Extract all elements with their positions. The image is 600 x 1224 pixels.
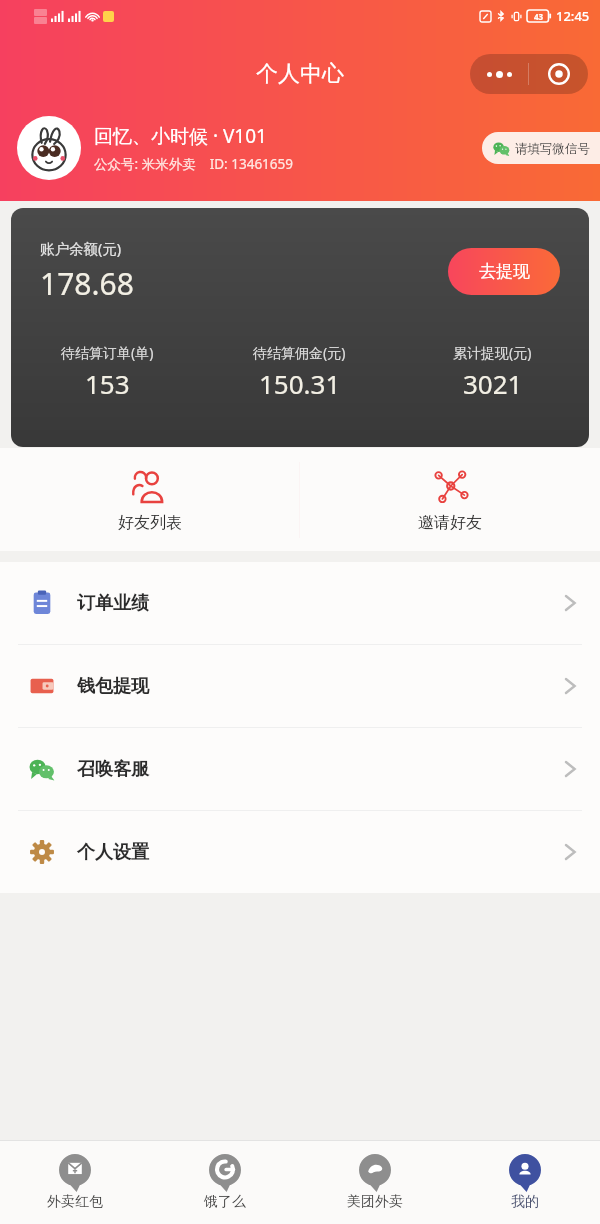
button[interactable]: 好友列表 xyxy=(0,448,299,551)
staticText: 邀请好友 xyxy=(418,513,482,533)
button[interactable]: 订单业绩 xyxy=(0,562,600,644)
button[interactable]: 个人设置 xyxy=(0,811,600,893)
staticText: 账户余额(元) xyxy=(40,238,122,258)
staticText: 153 xyxy=(85,366,130,401)
staticText: 43 xyxy=(534,11,544,22)
button[interactable]: 外卖红包 xyxy=(0,1141,150,1224)
button[interactable]: 邀请好友 xyxy=(300,448,600,551)
button[interactable]: Mini program xyxy=(529,54,588,94)
staticText: 个人设置 xyxy=(77,841,149,864)
staticText: 召唤客服 xyxy=(77,758,149,781)
staticText: 钱包提现 xyxy=(77,675,149,698)
staticText: 待结算订单(单) xyxy=(61,343,154,362)
staticText: 美团外卖 xyxy=(347,1193,403,1211)
staticText: 饿了么 xyxy=(204,1193,246,1211)
staticText: 外卖红包 xyxy=(47,1193,103,1211)
staticText: 好友列表 xyxy=(118,513,182,533)
button[interactable]: 召唤客服 xyxy=(0,728,600,810)
staticText: 回忆、小时候 · V101 xyxy=(94,123,267,149)
staticText: 178.68 xyxy=(40,263,134,304)
staticText: 去提现 xyxy=(479,261,530,282)
staticText: 我的 xyxy=(511,1193,539,1211)
staticText: 公众号: 米米外卖 ID: 13461659 xyxy=(94,155,294,173)
staticText: 订单业绩 xyxy=(77,592,149,615)
button[interactable]: 请填写微信号 xyxy=(482,132,600,164)
button[interactable]: 美团外卖 xyxy=(300,1141,450,1224)
button[interactable]: 钱包提现 xyxy=(0,645,600,727)
staticText: 累计提现(元) xyxy=(453,343,532,362)
staticText: 12:45 xyxy=(556,7,590,25)
button[interactable]: 我的 xyxy=(450,1141,600,1224)
button[interactable]: More options xyxy=(470,54,528,94)
staticText: 150.31 xyxy=(259,366,341,401)
staticText: 待结算佣金(元) xyxy=(253,343,346,362)
button[interactable]: 饿了么 xyxy=(150,1141,300,1224)
staticText: 3021 xyxy=(463,366,523,401)
staticText: 请填写微信号 xyxy=(515,141,590,157)
button[interactable]: 去提现 xyxy=(448,248,560,295)
staticText: 个人中心 xyxy=(256,60,344,88)
